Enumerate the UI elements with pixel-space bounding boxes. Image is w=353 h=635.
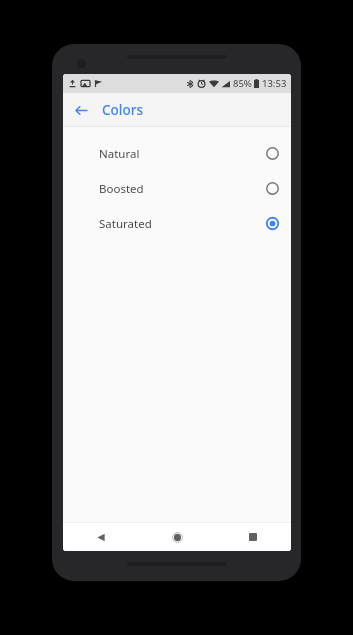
button[interactable]: Saturated [63,206,291,241]
button[interactable]: Natural [63,136,291,171]
button[interactable]: Navigate up [67,96,95,124]
staticText: Colors [102,101,143,119]
button[interactable]: Back [63,523,139,551]
staticText: Saturated [99,216,266,232]
staticText: 85% [233,77,252,90]
button[interactable]: Home [139,523,215,551]
staticText: Boosted [99,181,266,197]
staticText: 13:53 [262,77,287,90]
button[interactable]: Boosted [63,171,291,206]
button[interactable]: Recent apps [215,523,291,551]
staticText: Natural [99,146,266,162]
